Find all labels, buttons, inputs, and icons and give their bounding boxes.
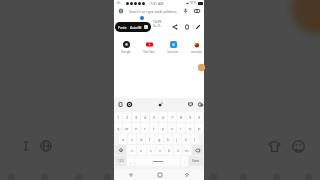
button[interactable]: new.sho <box>186 41 206 54</box>
staticText: b <box>168 148 171 153</box>
button[interactable]: YouTube <box>139 41 159 54</box>
button[interactable]: i <box>177 123 185 133</box>
staticText: g <box>158 137 161 142</box>
staticText: m <box>185 148 189 153</box>
other: Emoji <box>292 140 305 153</box>
button[interactable]: 4 <box>141 112 149 122</box>
staticText: w <box>125 126 129 131</box>
button[interactable]: p <box>195 123 203 133</box>
staticText: 14 BY <box>153 20 162 24</box>
staticText: 3 <box>135 115 138 120</box>
button[interactable]: Home <box>156 171 164 179</box>
button[interactable]: 1 <box>115 112 122 122</box>
button[interactable]: 6 <box>159 112 167 122</box>
button[interactable]: Shift <box>115 145 126 155</box>
staticText: d <box>140 137 143 142</box>
button[interactable]: w <box>123 123 131 133</box>
staticText: Google <box>121 50 131 54</box>
button[interactable]: Translate <box>188 102 193 107</box>
other: Text cursor <box>21 141 31 151</box>
staticText: z <box>131 148 133 153</box>
button[interactable]: Google <box>116 41 136 54</box>
button[interactable]: 3 <box>132 112 140 122</box>
staticText: , <box>130 159 132 164</box>
staticText: 7 <box>171 115 174 120</box>
button[interactable]: Share <box>172 24 178 30</box>
staticText: No 20.. <box>153 24 162 28</box>
button[interactable]: Start <box>189 156 203 166</box>
staticText: Internet.. <box>167 50 180 54</box>
button[interactable]: o <box>186 123 194 133</box>
button[interactable]: Edit <box>195 24 201 30</box>
staticText: 2 <box>126 115 129 120</box>
button[interactable]: l <box>191 134 199 144</box>
button[interactable]: h <box>164 134 172 144</box>
other: Stickers <box>268 140 281 153</box>
button[interactable]: r <box>141 123 149 133</box>
staticText: i <box>180 126 182 131</box>
staticText: f <box>149 137 151 142</box>
staticText: YouTube <box>143 50 155 54</box>
button[interactable]: x <box>137 145 146 155</box>
button[interactable]: d <box>137 134 145 144</box>
button[interactable]: 0 <box>195 112 203 122</box>
button[interactable]: Clipboard <box>118 102 123 107</box>
staticText: t <box>153 126 155 131</box>
button[interactable]: 7 <box>168 112 176 122</box>
button[interactable]: 123 <box>115 156 126 166</box>
staticText: k <box>185 137 188 142</box>
staticText: 6 <box>162 115 165 120</box>
button[interactable]: c <box>147 145 155 155</box>
staticText: 4G <box>117 1 121 5</box>
button[interactable]: Internet.. <box>163 41 183 54</box>
button[interactable]: j <box>173 134 181 144</box>
staticText: 8 <box>180 115 183 120</box>
button[interactable]: Space <box>135 156 180 166</box>
button[interactable]: Backspace <box>192 145 203 155</box>
button[interactable]: m <box>183 145 191 155</box>
staticText: 4 <box>144 115 147 120</box>
button[interactable]: k <box>182 134 190 144</box>
button[interactable]: f <box>146 134 154 144</box>
staticText: j <box>176 137 178 142</box>
button[interactable]: Paste <box>118 25 127 30</box>
button[interactable]: More keyboard options <box>198 102 203 107</box>
staticText: u <box>171 126 174 131</box>
staticText: n <box>177 148 180 153</box>
button[interactable]: q <box>115 123 122 133</box>
button[interactable]: n <box>174 145 182 155</box>
button[interactable]: Back <box>183 171 191 179</box>
button[interactable]: Autofill <box>130 25 142 30</box>
button[interactable]: e <box>132 123 140 133</box>
staticText: e <box>135 126 138 131</box>
staticText: y <box>162 126 165 131</box>
other: Language <box>40 140 52 152</box>
staticText: . <box>184 159 186 164</box>
button[interactable]: g <box>155 134 163 144</box>
button[interactable]: 9 <box>186 112 194 122</box>
button[interactable]: , <box>127 156 134 166</box>
button[interactable]: 8 <box>177 112 185 122</box>
button[interactable]: v <box>156 145 164 155</box>
staticText: l <box>194 137 196 142</box>
button[interactable]: More options <box>144 25 148 29</box>
button[interactable]: Keyboard settings <box>127 102 132 107</box>
button[interactable]: Bookmark <box>184 24 190 30</box>
button[interactable]: t <box>150 123 158 133</box>
button[interactable]: 5 <box>150 112 158 122</box>
button[interactable]: Search with camera <box>194 8 200 14</box>
staticText: o <box>189 126 192 131</box>
staticText: c <box>150 148 152 153</box>
button[interactable]: Recent apps <box>127 171 135 179</box>
button[interactable]: u <box>168 123 176 133</box>
staticText: new.sho <box>191 50 202 54</box>
button[interactable]: a <box>119 134 127 144</box>
button[interactable]: b <box>165 145 173 155</box>
button[interactable]: Voice search <box>183 8 188 13</box>
button[interactable]: Search or type web address <box>114 7 204 15</box>
button[interactable]: y <box>159 123 167 133</box>
button[interactable]: s <box>128 134 136 144</box>
button[interactable]: 2 <box>123 112 131 122</box>
button[interactable]: z <box>127 145 136 155</box>
